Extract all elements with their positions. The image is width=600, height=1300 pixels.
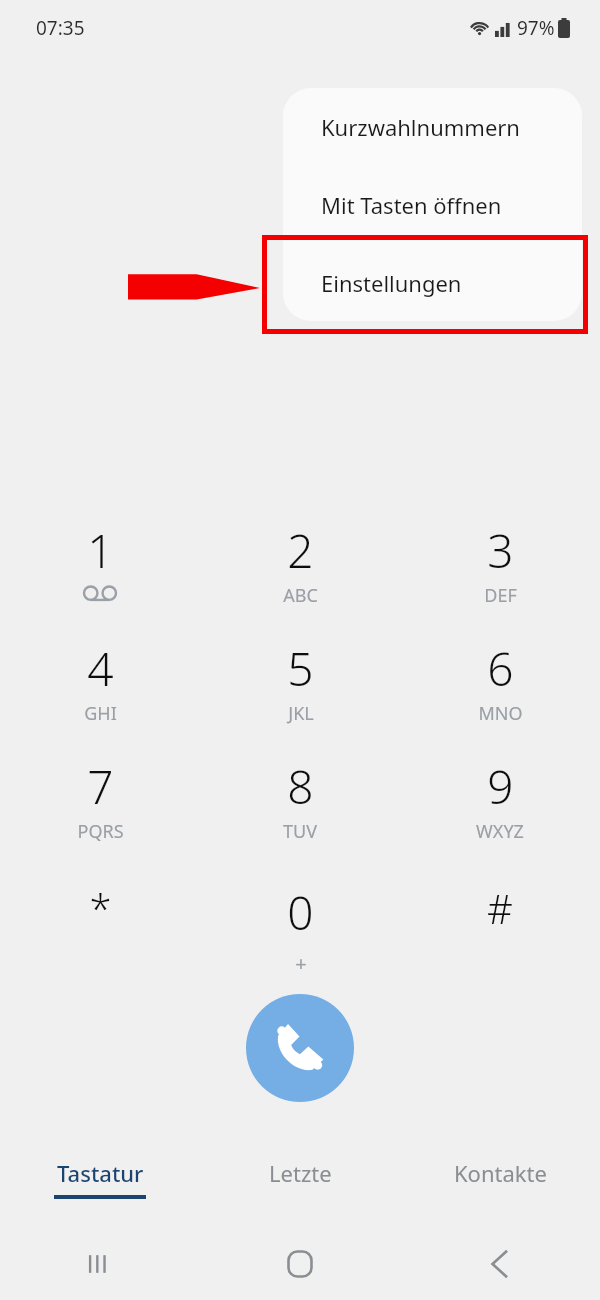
staticText: 0 (287, 881, 314, 944)
button[interactable]: Einstellungen (283, 244, 582, 321)
staticText: 97% (517, 15, 555, 41)
button[interactable]: Mit Tasten öffnen (283, 166, 582, 244)
staticText: 1 (87, 519, 114, 582)
button[interactable]: 5 (200, 631, 400, 749)
staticText: 6 (487, 637, 514, 700)
staticText: PQRS (77, 819, 124, 844)
staticText: + (295, 950, 307, 977)
button[interactable]: Kontakte (400, 1140, 600, 1220)
staticText: Einstellungen (321, 268, 462, 298)
button[interactable]: Tastatur (0, 1140, 200, 1220)
staticText: Tastatur (57, 1158, 144, 1188)
button[interactable]: 0 (200, 867, 400, 985)
staticText: 3 (487, 519, 514, 582)
button[interactable]: Zurück (400, 1228, 600, 1300)
button[interactable]: * (0, 867, 200, 985)
button[interactable]: Anrufen (246, 994, 354, 1102)
staticText: MNO (478, 701, 523, 726)
button[interactable]: Startbildschirm (200, 1228, 400, 1300)
button[interactable]: Letzte Apps (0, 1228, 200, 1300)
staticText: JKL (288, 701, 314, 726)
staticText: 5 (287, 637, 314, 700)
button[interactable]: 1 (0, 513, 200, 631)
button[interactable]: 7 (0, 749, 200, 867)
staticText: 4 (87, 637, 114, 700)
staticText: Kontakte (454, 1158, 547, 1188)
button[interactable]: 6 (400, 631, 600, 749)
staticText: 8 (287, 755, 314, 818)
staticText: 7 (87, 755, 114, 818)
button[interactable]: Kurzwahlnummern (283, 88, 582, 166)
button[interactable]: 8 (200, 749, 400, 867)
button[interactable]: 4 (0, 631, 200, 749)
staticText: 07:35 (36, 15, 85, 41)
staticText: DEF (484, 583, 517, 608)
staticText: TUV (283, 819, 317, 844)
staticText: Kurzwahlnummern (321, 112, 520, 142)
staticText: ABC (283, 583, 318, 608)
button[interactable]: 3 (400, 513, 600, 631)
button[interactable]: 2 (200, 513, 400, 631)
staticText: # (487, 881, 513, 935)
staticText: 2 (287, 519, 314, 582)
staticText: 9 (487, 755, 514, 818)
staticText: * (89, 881, 112, 935)
staticText: Letzte (269, 1158, 332, 1188)
staticText: GHI (84, 701, 117, 726)
button[interactable]: Letzte (200, 1140, 400, 1220)
staticText: WXYZ (476, 819, 524, 844)
button[interactable]: # (400, 867, 600, 985)
staticText: Mit Tasten öffnen (321, 190, 502, 220)
button[interactable]: 9 (400, 749, 600, 867)
